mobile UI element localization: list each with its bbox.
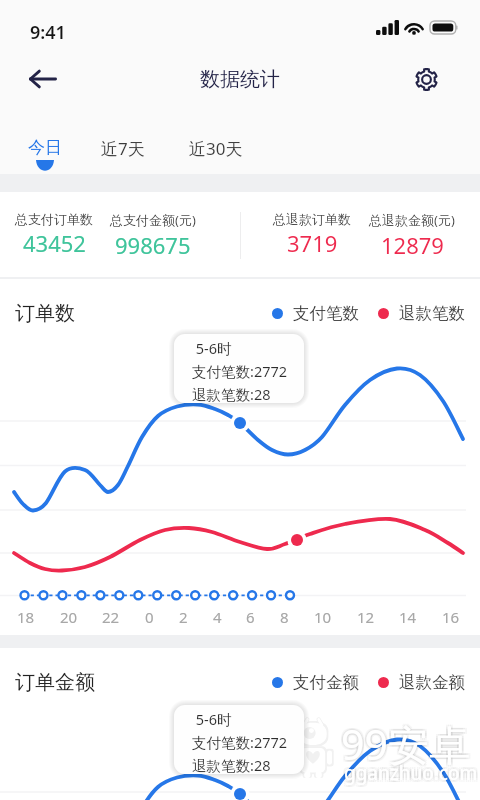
button[interactable]: Settings: [402, 55, 450, 103]
staticText: 近7天: [101, 137, 145, 160]
button[interactable]: 支付金额: [272, 672, 465, 693]
button[interactable]: 今日: [18, 131, 72, 176]
button[interactable]: 5-6时: [174, 334, 304, 403]
staticText: gganzhuo.com: [342, 760, 476, 786]
staticText: 14: [399, 607, 417, 627]
staticText: 22: [102, 607, 120, 627]
staticText: 16: [442, 607, 460, 627]
staticText: gganzhuo.com: [346, 760, 480, 786]
staticText: 10: [314, 607, 332, 627]
staticText: 20: [60, 607, 78, 627]
staticText: 总支付订单数: [15, 211, 93, 227]
staticText: 总退款金额(元): [369, 211, 455, 229]
staticText: 支付金额: [293, 672, 359, 693]
button[interactable]: 支付笔数: [272, 303, 465, 324]
staticText: 退款笔数: [399, 303, 465, 324]
staticText: 99安卓: [343, 716, 472, 772]
staticText: 4: [213, 607, 222, 627]
staticText: 99安卓: [341, 716, 470, 772]
staticText: 5-6时: [192, 338, 232, 358]
staticText: gganzhuo.com: [342, 762, 476, 788]
button[interactable]: 近30天: [179, 131, 253, 166]
staticText: 99安卓: [339, 716, 468, 772]
staticText: 支付笔数:2772: [192, 361, 288, 381]
staticText: 18: [17, 607, 35, 627]
staticText: 数据统计: [200, 67, 280, 92]
staticText: 99安卓: [343, 714, 472, 770]
staticText: 43452: [23, 228, 86, 258]
button[interactable]: 总支付金额(元): [93, 192, 213, 277]
staticText: gganzhuo.com: [344, 758, 478, 784]
button[interactable]: 总支付订单数: [0, 192, 114, 277]
staticText: 近30天: [189, 137, 243, 160]
staticText: 总退款订单数: [273, 211, 351, 227]
staticText: 99安卓: [341, 714, 470, 770]
staticText: gganzhuo.com: [346, 762, 480, 788]
staticText: 3719: [287, 228, 338, 258]
staticText: 支付笔数:2772: [192, 732, 288, 752]
staticText: gganzhuo.com: [342, 758, 476, 784]
button[interactable]: Back: [15, 55, 70, 103]
staticText: 99安卓: [341, 718, 470, 774]
staticText: 今日: [28, 137, 62, 158]
button[interactable]: 总退款金额(元): [352, 192, 472, 277]
button[interactable]: 5-6时: [174, 705, 304, 774]
staticText: 订单金额: [15, 670, 95, 695]
staticText: 99安卓: [339, 714, 468, 770]
staticText: 9:41: [30, 20, 66, 45]
staticText: 99安卓: [343, 718, 472, 774]
staticText: 6: [246, 607, 255, 627]
staticText: 退款笔数:28: [192, 755, 271, 774]
staticText: 5-6时: [192, 709, 232, 729]
staticText: 99安卓: [339, 718, 468, 774]
staticText: 订单数: [15, 301, 75, 326]
staticText: 退款笔数:28: [192, 384, 271, 403]
button[interactable]: 近7天: [91, 131, 155, 166]
staticText: gganzhuo.com: [346, 758, 480, 784]
staticText: 0: [145, 607, 154, 627]
staticText: 998675: [115, 230, 191, 260]
button[interactable]: 总退款订单数: [252, 192, 372, 277]
staticText: 12879: [381, 230, 444, 260]
staticText: 退款金额: [399, 672, 465, 693]
staticText: 8: [280, 607, 289, 627]
staticText: 支付笔数: [293, 303, 359, 324]
staticText: 2: [179, 607, 188, 627]
staticText: gganzhuo.com: [344, 762, 478, 788]
staticText: 12: [357, 607, 375, 627]
staticText: gganzhuo.com: [344, 760, 478, 786]
staticText: 总支付金额(元): [110, 211, 196, 229]
